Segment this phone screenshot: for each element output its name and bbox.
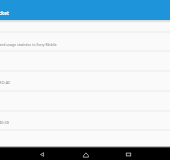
button[interactable] bbox=[0, 129, 170, 147]
staticText: RO-AC bbox=[0, 80, 11, 85]
staticText: 40:30 bbox=[0, 120, 9, 125]
staticText: cket bbox=[0, 10, 9, 16]
button[interactable] bbox=[0, 20, 170, 31]
button[interactable] bbox=[0, 110, 170, 129]
button[interactable]: Home bbox=[79, 148, 92, 160]
button[interactable]: cket bbox=[0, 0, 170, 20]
staticText: and usage statistics to Sony Mobile bbox=[0, 42, 57, 47]
button[interactable]: Back bbox=[36, 148, 49, 160]
button[interactable] bbox=[0, 70, 170, 90]
button[interactable]: Recents bbox=[122, 148, 135, 160]
button[interactable] bbox=[0, 31, 170, 50]
